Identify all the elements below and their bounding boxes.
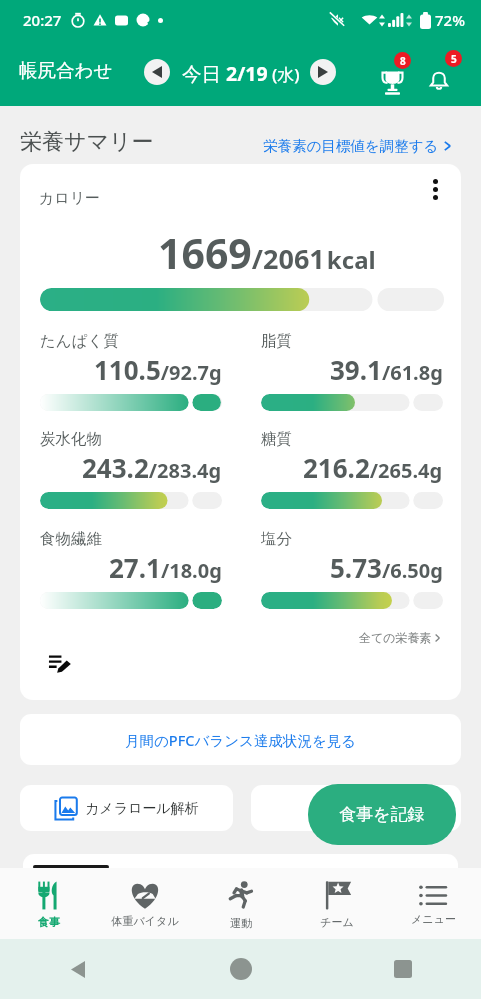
- staticText: 243.2/283.4g: [82, 450, 222, 485]
- button[interactable]: Recents: [385, 951, 421, 987]
- staticText: 栄養サマリー: [20, 128, 154, 156]
- staticText: カメラロール解析: [85, 800, 199, 818]
- staticText: 39.1/61.8g: [330, 352, 443, 387]
- button[interactable]: AI相談: [251, 785, 461, 831]
- staticText: 110.5/92.7g: [94, 352, 222, 387]
- button[interactable]: 食事: [0, 868, 97, 939]
- button[interactable]: 運動: [193, 868, 289, 939]
- button[interactable]: カメラロール解析: [20, 785, 233, 831]
- staticText: AI相談: [354, 799, 397, 818]
- staticText: 食物繊維: [40, 529, 102, 549]
- button[interactable]: 食事を記録: [308, 784, 456, 845]
- button[interactable]: 栄養サマリー: [20, 128, 154, 156]
- button[interactable]: Home: [223, 951, 259, 987]
- button[interactable]: Edit memo: [42, 644, 78, 680]
- staticText: 糖質: [261, 429, 292, 449]
- staticText: 運動: [230, 916, 252, 930]
- staticText: 72%: [435, 10, 465, 30]
- staticText: 食事を記録: [339, 804, 425, 825]
- staticText: 8: [400, 54, 406, 68]
- staticText: 栄養素の目標値を調整する: [263, 137, 439, 155]
- button[interactable]: 全ての栄養素: [359, 630, 440, 645]
- staticText: 5.73/6.50g: [330, 550, 443, 585]
- staticText: 月間のPFCバランス達成状況を見る: [125, 730, 357, 750]
- button[interactable]: Next day: [310, 59, 336, 85]
- button[interactable]: More options: [420, 174, 450, 204]
- button[interactable]: Back: [60, 951, 96, 987]
- staticText: たんぱく質: [40, 331, 119, 351]
- button[interactable]: 体重バイタル: [97, 868, 193, 939]
- staticText: 脂質: [261, 331, 292, 351]
- staticText: 帳尻合わせ: [19, 59, 113, 82]
- button[interactable]: Notifications: [416, 50, 462, 96]
- button[interactable]: 栄養素の目標値を調整する: [263, 137, 451, 155]
- button[interactable]: Trophy: [372, 52, 418, 98]
- staticText: メニュー: [411, 912, 456, 926]
- staticText: 食事: [38, 915, 60, 929]
- staticText: カロリー: [39, 189, 101, 208]
- staticText: 今日 2/19 (水): [182, 60, 300, 87]
- staticText: 20:27: [23, 10, 62, 30]
- staticText: 27.1/18.0g: [109, 550, 222, 585]
- staticText: チーム: [320, 915, 354, 929]
- staticText: 炭水化物: [40, 429, 102, 449]
- staticText: 1669/2061 kcal: [158, 225, 376, 281]
- staticText: 体重バイタル: [111, 914, 179, 928]
- staticText: 5: [451, 52, 457, 66]
- button[interactable]: 月間のPFCバランス達成状況を見る: [20, 714, 461, 765]
- staticText: 全ての栄養素: [359, 630, 432, 645]
- button[interactable]: 帳尻合わせ: [19, 59, 113, 82]
- button[interactable]: チーム: [289, 868, 385, 939]
- staticText: 216.2/265.4g: [303, 450, 443, 485]
- button[interactable]: メニュー: [385, 868, 481, 939]
- staticText: 塩分: [261, 529, 292, 549]
- button[interactable]: Previous day: [144, 59, 170, 85]
